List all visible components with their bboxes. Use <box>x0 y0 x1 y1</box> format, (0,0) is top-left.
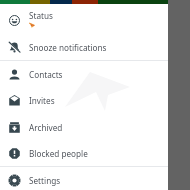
button[interactable]: Invites <box>0 87 168 113</box>
staticText: Blocked people <box>29 148 88 159</box>
other: Archived <box>9 122 20 133</box>
staticText: Contacts <box>29 69 63 80</box>
staticText: Invites <box>29 95 55 106</box>
staticText: Settings <box>29 175 61 186</box>
staticText: Snooze notifications <box>29 42 107 53</box>
button[interactable]: Snooze notifications <box>0 34 168 61</box>
other: Settings <box>9 175 20 186</box>
staticText: Status <box>29 10 53 21</box>
button[interactable]: Contacts <box>0 61 168 87</box>
button[interactable]: Blocked people <box>0 140 168 166</box>
button[interactable]: Settings <box>0 167 168 190</box>
other: Snooze notifications <box>9 42 20 53</box>
other: Status <box>9 15 20 26</box>
other: Invites <box>9 95 20 106</box>
button[interactable]: Status <box>0 7 168 34</box>
other: Contacts <box>9 69 20 80</box>
button[interactable]: Archived <box>0 114 168 140</box>
staticText: Archived <box>29 122 63 133</box>
other: Blocked people <box>9 148 20 159</box>
